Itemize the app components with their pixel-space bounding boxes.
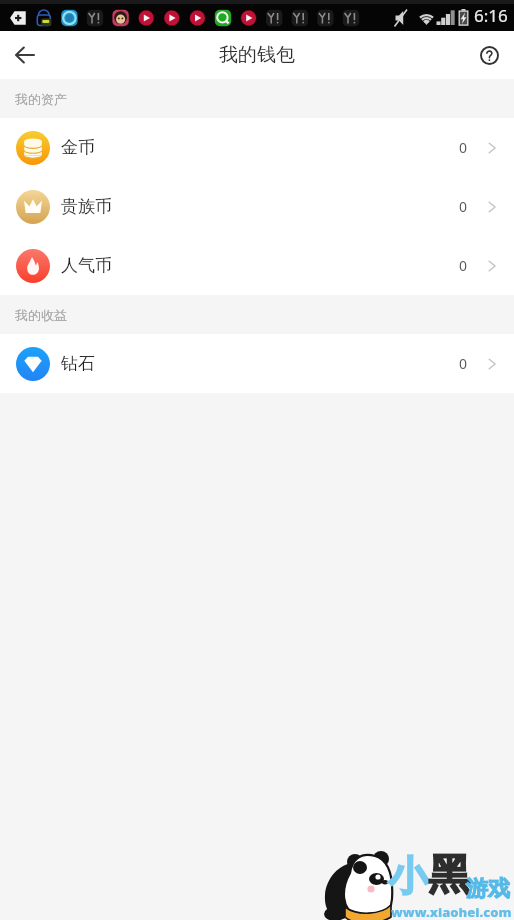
staticText: 0	[459, 354, 468, 373]
button[interactable]: Help	[467, 33, 511, 77]
staticText: 小	[388, 851, 428, 901]
staticText: 0	[459, 138, 468, 157]
button[interactable]: 钻石	[0, 334, 514, 393]
button[interactable]: 金币	[0, 118, 514, 177]
staticText: 游戏	[466, 875, 510, 903]
staticText: 我的资产	[15, 91, 67, 107]
staticText: 0	[459, 256, 468, 275]
button[interactable]: Back	[3, 33, 47, 77]
staticText: 人气币	[61, 255, 112, 276]
button[interactable]: 贵族币	[0, 177, 514, 236]
staticText: 我的钱包	[219, 43, 295, 67]
button[interactable]: 人气币	[0, 236, 514, 295]
staticText: 0	[459, 197, 468, 216]
staticText: 金币	[61, 137, 95, 158]
staticText: 钻石	[61, 353, 95, 374]
staticText: 贵族币	[61, 196, 112, 217]
staticText: www.xiaohei.com	[391, 903, 512, 920]
staticText: 6:16	[474, 4, 508, 27]
staticText: 黑	[428, 849, 470, 902]
staticText: 我的收益	[15, 307, 67, 323]
